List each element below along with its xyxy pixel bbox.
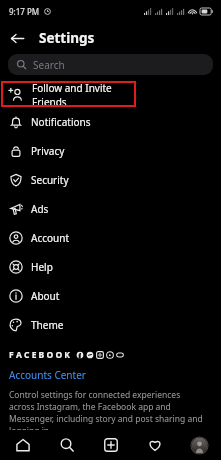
- button[interactable]: About: [0, 281, 221, 310]
- staticText: Accounts Center: [9, 368, 86, 382]
- button[interactable]: Notifications: [0, 107, 221, 136]
- button[interactable]: Search: [45, 430, 89, 460]
- button[interactable]: Create: [89, 430, 133, 460]
- staticText: Ads: [31, 202, 49, 216]
- button[interactable]: Accounts Center: [9, 368, 86, 382]
- staticText: Notifications: [31, 115, 91, 129]
- button[interactable]: Profile: [177, 430, 221, 460]
- staticText: Control settings for connected experienc…: [9, 389, 206, 437]
- staticText: Privacy: [31, 144, 65, 158]
- staticText: Security: [31, 173, 69, 187]
- button[interactable]: Privacy: [0, 136, 221, 165]
- staticText: Help: [31, 260, 53, 274]
- staticText: Account: [31, 231, 70, 245]
- button[interactable]: Account: [0, 223, 221, 252]
- staticText: Settings: [39, 29, 95, 47]
- button[interactable]: Theme: [0, 310, 221, 339]
- button[interactable]: Search: [8, 54, 213, 75]
- button[interactable]: Ads: [0, 194, 221, 223]
- staticText: Search: [33, 58, 65, 72]
- button[interactable]: Activity: [133, 430, 177, 460]
- staticText: F A C E B O O K: [9, 349, 70, 361]
- button[interactable]: Home: [0, 430, 45, 460]
- staticText: Theme: [31, 318, 64, 332]
- staticText: About: [31, 289, 60, 303]
- button[interactable]: Security: [0, 165, 221, 194]
- staticText: 9:17 PM: [9, 6, 40, 17]
- staticText: Follow and Invite Friends: [32, 81, 136, 107]
- button[interactable]: Follow and Invite Friends: [1, 81, 136, 107]
- button[interactable]: Back: [5, 26, 29, 50]
- button[interactable]: Help: [0, 252, 221, 281]
